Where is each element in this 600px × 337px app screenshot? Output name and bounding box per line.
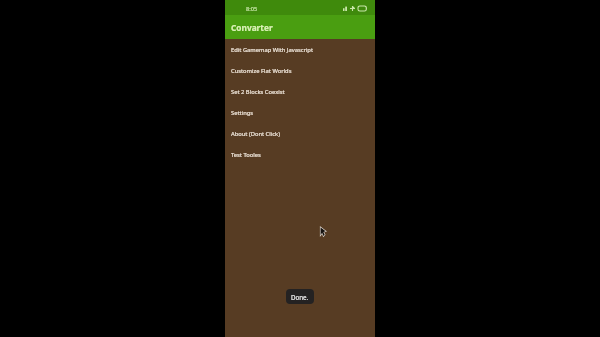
button[interactable]: About (Dont Click) — [225, 123, 375, 144]
button[interactable]: Test Tooles — [225, 144, 375, 165]
button[interactable]: Edit Gamemap With Javascript — [225, 39, 375, 60]
button[interactable]: Convarter — [225, 15, 273, 39]
staticText: Settings — [231, 109, 254, 117]
staticText: Done. — [291, 293, 309, 301]
staticText: Set 2 Blocks Coexist — [231, 88, 285, 96]
staticText: Edit Gamemap With Javascript — [231, 46, 313, 54]
staticText: About (Dont Click) — [231, 130, 280, 138]
button[interactable]: Set 2 Blocks Coexist — [225, 81, 375, 102]
staticText: Convarter — [231, 22, 273, 33]
button[interactable]: Done. — [286, 289, 314, 304]
staticText: 8:05 — [246, 5, 258, 13]
staticText: Test Tooles — [231, 151, 261, 159]
staticText: Customize Flat Worlds — [231, 67, 292, 75]
button[interactable]: Customize Flat Worlds — [225, 60, 375, 81]
button[interactable]: Settings — [225, 102, 375, 123]
